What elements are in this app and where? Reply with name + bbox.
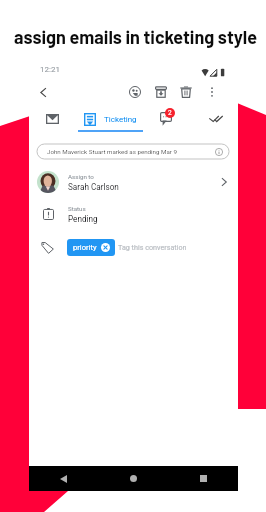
staticText: priority — [73, 243, 97, 252]
staticText: 2 — [168, 109, 172, 117]
button[interactable]: Assign to — [29, 167, 238, 197]
staticText: 12:21 — [40, 65, 60, 74]
button[interactable]: Back — [33, 82, 53, 102]
button[interactable]: Home — [98, 466, 168, 491]
staticText: Status — [68, 205, 86, 212]
staticText: Assign to — [68, 173, 94, 180]
button[interactable]: Archive — [152, 83, 170, 101]
staticText: Pending — [68, 214, 98, 224]
button[interactable]: John Maverick Stuart marked as pending M… — [37, 144, 229, 159]
button[interactable]: More options — [203, 83, 221, 101]
button[interactable]: Back — [29, 466, 98, 491]
button[interactable]: priority — [67, 239, 115, 256]
staticText: Tag this conversation — [118, 243, 187, 251]
button[interactable]: Delete — [177, 83, 195, 101]
button[interactable]: Ticketing — [78, 106, 143, 132]
staticText: John Maverick Stuart marked as pending M… — [47, 148, 177, 155]
button[interactable]: Snooze — [126, 83, 144, 101]
button[interactable]: Status — [29, 199, 238, 229]
staticText: assign emails in ticketing style — [14, 26, 258, 48]
staticText: Sarah Carlson — [68, 182, 119, 192]
button[interactable]: Recent apps — [168, 466, 238, 491]
staticText: Ticketing — [104, 115, 137, 124]
button[interactable]: Comments — [153, 106, 183, 132]
button[interactable]: Inbox — [29, 106, 75, 132]
button[interactable]: Resolved — [195, 106, 237, 132]
